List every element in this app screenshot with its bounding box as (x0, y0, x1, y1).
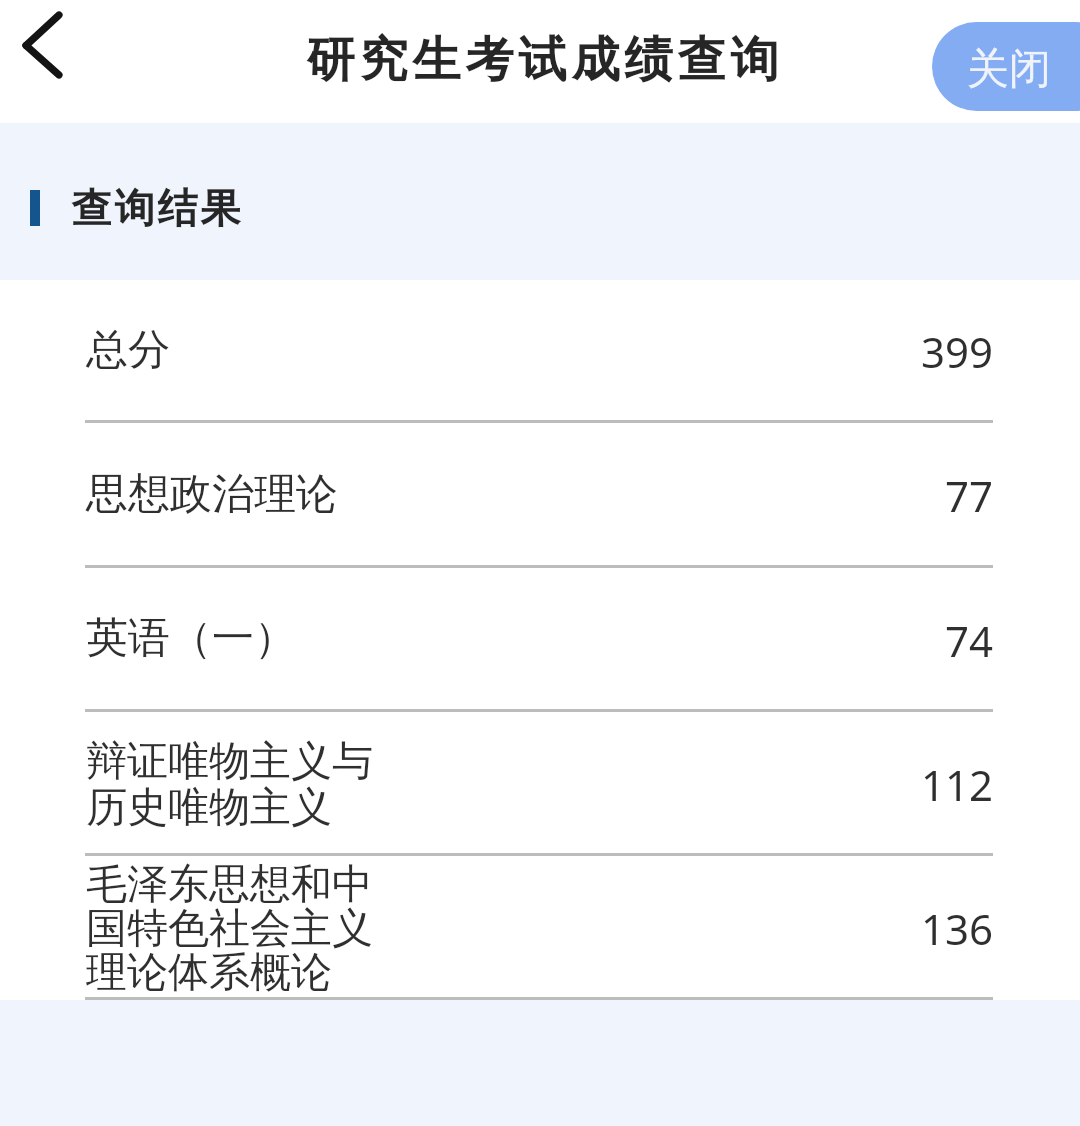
staticText: 英语（一） (86, 616, 296, 664)
staticText: 74 (944, 612, 993, 669)
staticText: 毛泽东思想和中 国特色社会主义 理论体系概论 (86, 865, 373, 997)
button[interactable]: 关闭 (932, 22, 1080, 111)
staticText: 总分 (86, 328, 170, 376)
staticText: 查询结果 (70, 183, 242, 233)
staticText: 399 (920, 323, 993, 380)
button[interactable]: 毛泽东思想和中 国特色社会主义 理论体系概论 (0, 856, 1080, 1000)
staticText: 研究生考试成绩查询 (304, 30, 781, 90)
button[interactable]: 辩证唯物主义与 历史唯物主义 (0, 712, 1080, 856)
staticText: 思想政治理论 (86, 472, 338, 520)
staticText: 77 (944, 467, 993, 524)
staticText: 关闭 (967, 43, 1051, 96)
button[interactable]: Back (0, 0, 88, 88)
staticText: 136 (920, 900, 993, 957)
button[interactable]: 总分 (0, 280, 1080, 423)
button[interactable]: 英语（一） (0, 568, 1080, 712)
staticText: 112 (920, 756, 993, 813)
staticText: 辩证唯物主义与 历史唯物主义 (86, 741, 373, 833)
button[interactable]: 思想政治理论 (0, 423, 1080, 568)
